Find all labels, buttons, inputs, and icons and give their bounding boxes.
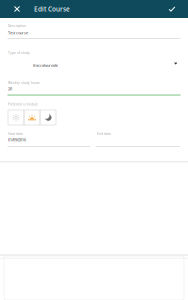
staticText: 01/09/2016 <box>8 137 26 142</box>
button[interactable]: Baccalaureate <box>0 0 188 9</box>
staticText: Weekly study hours <box>8 80 40 85</box>
staticText: Edit Course <box>34 5 70 13</box>
staticText: Preferred schedule <box>8 102 38 106</box>
button[interactable]: Daytime <box>24 110 40 125</box>
button[interactable]: Close <box>0 0 34 18</box>
staticText: Baccalaureate <box>33 62 58 68</box>
button[interactable]: Morning <box>8 110 24 125</box>
button[interactable]: Evening <box>40 110 56 125</box>
staticText: 20 <box>8 86 12 91</box>
staticText: End date <box>97 132 111 136</box>
staticText: Test course <box>8 30 28 35</box>
staticText: Description <box>8 23 26 28</box>
staticText: Type of study <box>8 50 30 55</box>
staticText: Start date <box>8 132 23 136</box>
button[interactable]: Save <box>156 0 188 18</box>
